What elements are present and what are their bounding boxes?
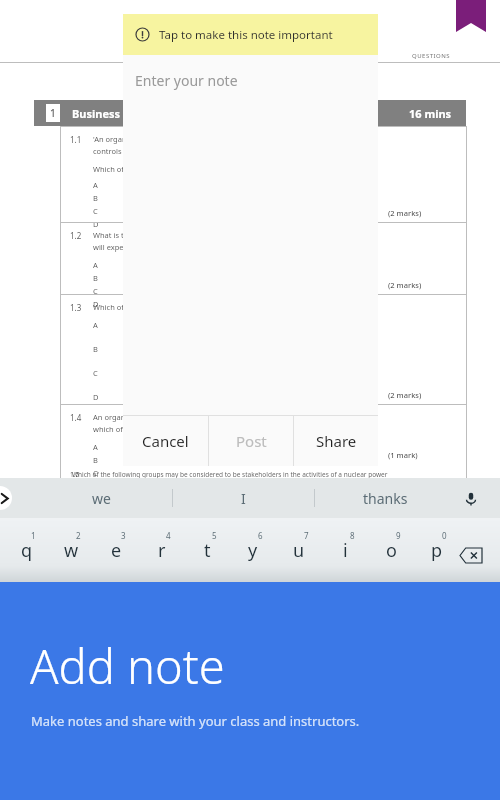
staticText: 2 — [76, 530, 81, 541]
staticText: o — [386, 538, 397, 563]
button[interactable]: Expand suggestions — [0, 486, 12, 510]
button[interactable]: 3 — [94, 518, 139, 582]
staticText: Add note — [30, 634, 225, 698]
button[interactable]: 7 — [276, 518, 322, 582]
staticText: Business organisation and environment — [72, 106, 291, 121]
staticText: An organisation is best described as — [93, 412, 220, 422]
button[interactable]: Cancel — [123, 416, 208, 466]
button[interactable]: Voice input — [458, 486, 484, 512]
staticText: 1.4 — [70, 412, 82, 423]
staticText: A — [93, 260, 98, 270]
staticText: 3 — [121, 530, 126, 541]
staticText: t — [204, 538, 211, 563]
staticText: B — [93, 273, 98, 283]
staticText: will expect to achieve a goal? — [93, 242, 195, 252]
staticText: Make notes and share with your class and… — [31, 712, 360, 730]
staticText: e — [111, 538, 122, 563]
staticText: Which of the following is correct? — [93, 302, 210, 312]
button[interactable]: we — [30, 478, 172, 518]
staticText: Which of the following completes the sta… — [93, 164, 265, 174]
button[interactable]: Backspace — [456, 544, 486, 566]
staticText: 16 mins — [409, 106, 452, 121]
staticText: which of the following? — [93, 424, 174, 434]
button[interactable]: 5 — [184, 518, 230, 582]
staticText: D — [93, 219, 99, 229]
staticText: 1.2 — [70, 230, 82, 241]
button[interactable]: 2 — [49, 518, 94, 582]
staticText: Cancel — [142, 431, 189, 451]
staticText: B — [93, 455, 98, 465]
staticText: Which of the following groups may be con… — [72, 470, 388, 479]
staticText: (2 marks) — [388, 280, 422, 290]
staticText: u — [293, 538, 305, 563]
staticText: Post — [236, 431, 267, 451]
button[interactable]: 4 — [139, 518, 184, 582]
staticText: A — [93, 442, 98, 452]
staticText: controls and ..................... manag… — [93, 146, 235, 156]
button[interactable]: 6 — [230, 518, 276, 582]
button[interactable]: Tap to make this note important — [123, 14, 378, 55]
staticText: 1 — [50, 106, 56, 120]
staticText: 4 — [166, 530, 171, 541]
staticText: 8 — [350, 530, 355, 541]
staticText: q — [21, 538, 33, 563]
button[interactable]: I — [173, 478, 314, 518]
staticText: I — [241, 489, 246, 508]
staticText: C — [93, 286, 98, 296]
staticText: 5 — [212, 530, 217, 541]
staticText: C — [93, 468, 98, 478]
staticText: 1.5 — [70, 470, 80, 479]
staticText: A — [93, 320, 98, 330]
button[interactable]: thanks — [315, 478, 456, 518]
staticText: Tap to make this note important — [159, 27, 333, 43]
staticText: A — [93, 180, 98, 190]
staticText: Enter your note — [135, 71, 238, 90]
staticText: 1 — [31, 530, 36, 541]
button[interactable]: Add note — [0, 582, 500, 800]
staticText: B — [93, 344, 98, 354]
staticText: C — [93, 368, 98, 378]
staticText: What is the term for individuals working… — [93, 230, 267, 240]
staticText: Share — [316, 431, 357, 451]
staticText: 1.1 — [70, 134, 82, 145]
staticText: 6 — [258, 530, 263, 541]
staticText: QUESTIONS — [412, 52, 451, 60]
staticText: 1.3 — [70, 302, 82, 313]
staticText: D — [93, 299, 99, 309]
staticText: (1 mark) — [388, 450, 418, 460]
staticText: C — [93, 206, 98, 216]
button[interactable]: 9 — [368, 518, 414, 582]
staticText: thanks — [363, 489, 408, 508]
staticText: i — [343, 538, 348, 563]
button[interactable]: 1 — [4, 518, 49, 582]
staticText: y — [248, 538, 258, 563]
staticText: w — [64, 538, 79, 563]
staticText: we — [92, 489, 111, 508]
button[interactable]: Share — [294, 416, 378, 466]
staticText: 'An organisation which is owned and ....… — [93, 134, 281, 144]
staticText: 9 — [396, 530, 401, 541]
staticText: p — [431, 538, 443, 563]
staticText: 7 — [304, 530, 309, 541]
button[interactable]: Enter your note — [123, 55, 378, 415]
button[interactable]: 8 — [322, 518, 368, 582]
button[interactable]: 0 — [414, 518, 460, 582]
staticText: r — [158, 538, 166, 563]
button[interactable]: Post — [209, 416, 293, 466]
staticText: B — [93, 193, 98, 203]
staticText: (2 marks) — [388, 208, 422, 218]
staticText: (2 marks) — [388, 390, 422, 400]
staticText: 0 — [442, 530, 447, 541]
staticText: D — [93, 392, 99, 402]
